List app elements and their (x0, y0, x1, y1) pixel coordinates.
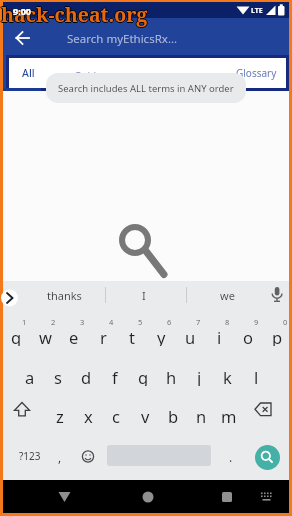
staticText: d (81, 366, 92, 386)
staticText: j (197, 366, 202, 386)
staticText: we (220, 288, 235, 303)
button[interactable]: we (202, 285, 252, 305)
button[interactable]: n (188, 405, 214, 425)
button[interactable]: a (17, 366, 43, 386)
staticText: h (166, 366, 177, 386)
staticText: hack-cheat.org (0, 1, 147, 28)
staticText: All (22, 66, 35, 80)
button[interactable]: x (75, 405, 101, 425)
button[interactable]: q (3, 326, 29, 346)
button[interactable] (3, 18, 289, 55)
button[interactable]: w (32, 326, 58, 346)
staticText: 7 (196, 317, 201, 327)
button[interactable] (206, 482, 248, 512)
button[interactable]: f (102, 366, 128, 386)
button[interactable]: i (206, 326, 232, 346)
button[interactable]: v (132, 405, 158, 425)
staticText: 6 (167, 317, 172, 327)
staticText: b (168, 405, 179, 425)
staticText: 1 (22, 317, 27, 327)
staticText: c (112, 405, 120, 425)
button[interactable]: s (45, 366, 71, 386)
staticText: 9 (254, 317, 259, 327)
button[interactable]: d (73, 366, 99, 386)
staticText: 4 (109, 317, 114, 327)
button[interactable] (53, 58, 223, 88)
button[interactable]: I (124, 285, 164, 305)
staticText: k (223, 366, 232, 386)
staticText: l (254, 366, 259, 386)
staticText: 5 (138, 317, 143, 327)
button[interactable]: . (223, 447, 239, 467)
staticText: m (221, 405, 237, 425)
button[interactable]: e (61, 326, 87, 346)
button[interactable]: z (47, 405, 73, 425)
staticText: r (100, 326, 107, 346)
button[interactable] (252, 482, 282, 512)
button[interactable]: r (90, 326, 116, 346)
button[interactable]: k (214, 366, 240, 386)
button[interactable] (255, 445, 280, 470)
button[interactable] (127, 482, 169, 512)
staticText: s (54, 366, 62, 386)
staticText: Search includes ALL terms in ANY order (58, 82, 234, 95)
button[interactable]: o (235, 326, 261, 346)
button[interactable]: , (52, 447, 68, 467)
button[interactable]: Search myEthicsRx… (62, 29, 182, 49)
staticText: LTE (251, 6, 263, 16)
staticText: o (243, 326, 253, 346)
button[interactable]: y (148, 326, 174, 346)
button[interactable]: h (158, 366, 184, 386)
staticText: 9:00 (13, 5, 31, 17)
button[interactable] (9, 58, 54, 88)
staticText: 8 (225, 317, 230, 327)
staticText: z (56, 405, 64, 425)
button[interactable]: ?123 (13, 446, 47, 466)
button[interactable]: b (160, 405, 186, 425)
button[interactable]: l (243, 366, 269, 386)
staticText: hack-cheat.org (1, 2, 148, 29)
button[interactable] (223, 58, 285, 88)
staticText: hack-cheat.org (2, 1, 149, 28)
button[interactable]: u (177, 326, 203, 346)
staticText: w (39, 326, 52, 346)
button[interactable] (8, 400, 38, 428)
staticText: n (196, 405, 207, 425)
button[interactable]: j (186, 366, 212, 386)
staticText: x (84, 405, 93, 425)
button[interactable]: t (119, 326, 145, 346)
staticText: thanks (47, 288, 82, 303)
staticText: u (185, 326, 196, 346)
button[interactable]: m (216, 405, 242, 425)
staticText: i (217, 326, 222, 346)
staticText: f (112, 366, 118, 386)
staticText: e (69, 326, 79, 346)
staticText: Guides (74, 69, 107, 83)
staticText: 3 (80, 317, 85, 327)
staticText: 9:00 (13, 5, 31, 17)
staticText: a (25, 366, 35, 386)
staticText: Glossary (236, 66, 277, 80)
staticText: hack-cheat.org (1, 1, 148, 28)
staticText: hack-cheat.org (1, 0, 148, 27)
staticText: g (138, 366, 149, 386)
button[interactable]: thanks (29, 285, 99, 305)
staticText: t (129, 326, 135, 346)
button[interactable]: c (103, 405, 129, 425)
staticText: 0 (283, 317, 288, 327)
button[interactable] (248, 400, 280, 428)
button[interactable]: g (130, 366, 156, 386)
staticText: ?123 (19, 449, 41, 463)
button[interactable] (44, 482, 86, 512)
button[interactable]: p (264, 326, 290, 346)
staticText: I (142, 288, 146, 303)
staticText: v (141, 405, 150, 425)
staticText: 2 (51, 317, 56, 327)
staticText: Search myEthicsRx… (67, 31, 177, 47)
staticText: q (11, 326, 22, 346)
staticText: p (272, 326, 283, 346)
staticText: . (229, 449, 233, 465)
button[interactable] (78, 446, 98, 466)
staticText: , (58, 449, 62, 465)
